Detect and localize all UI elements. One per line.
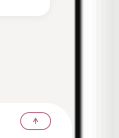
button[interactable]: Scroll to top [21,113,51,130]
